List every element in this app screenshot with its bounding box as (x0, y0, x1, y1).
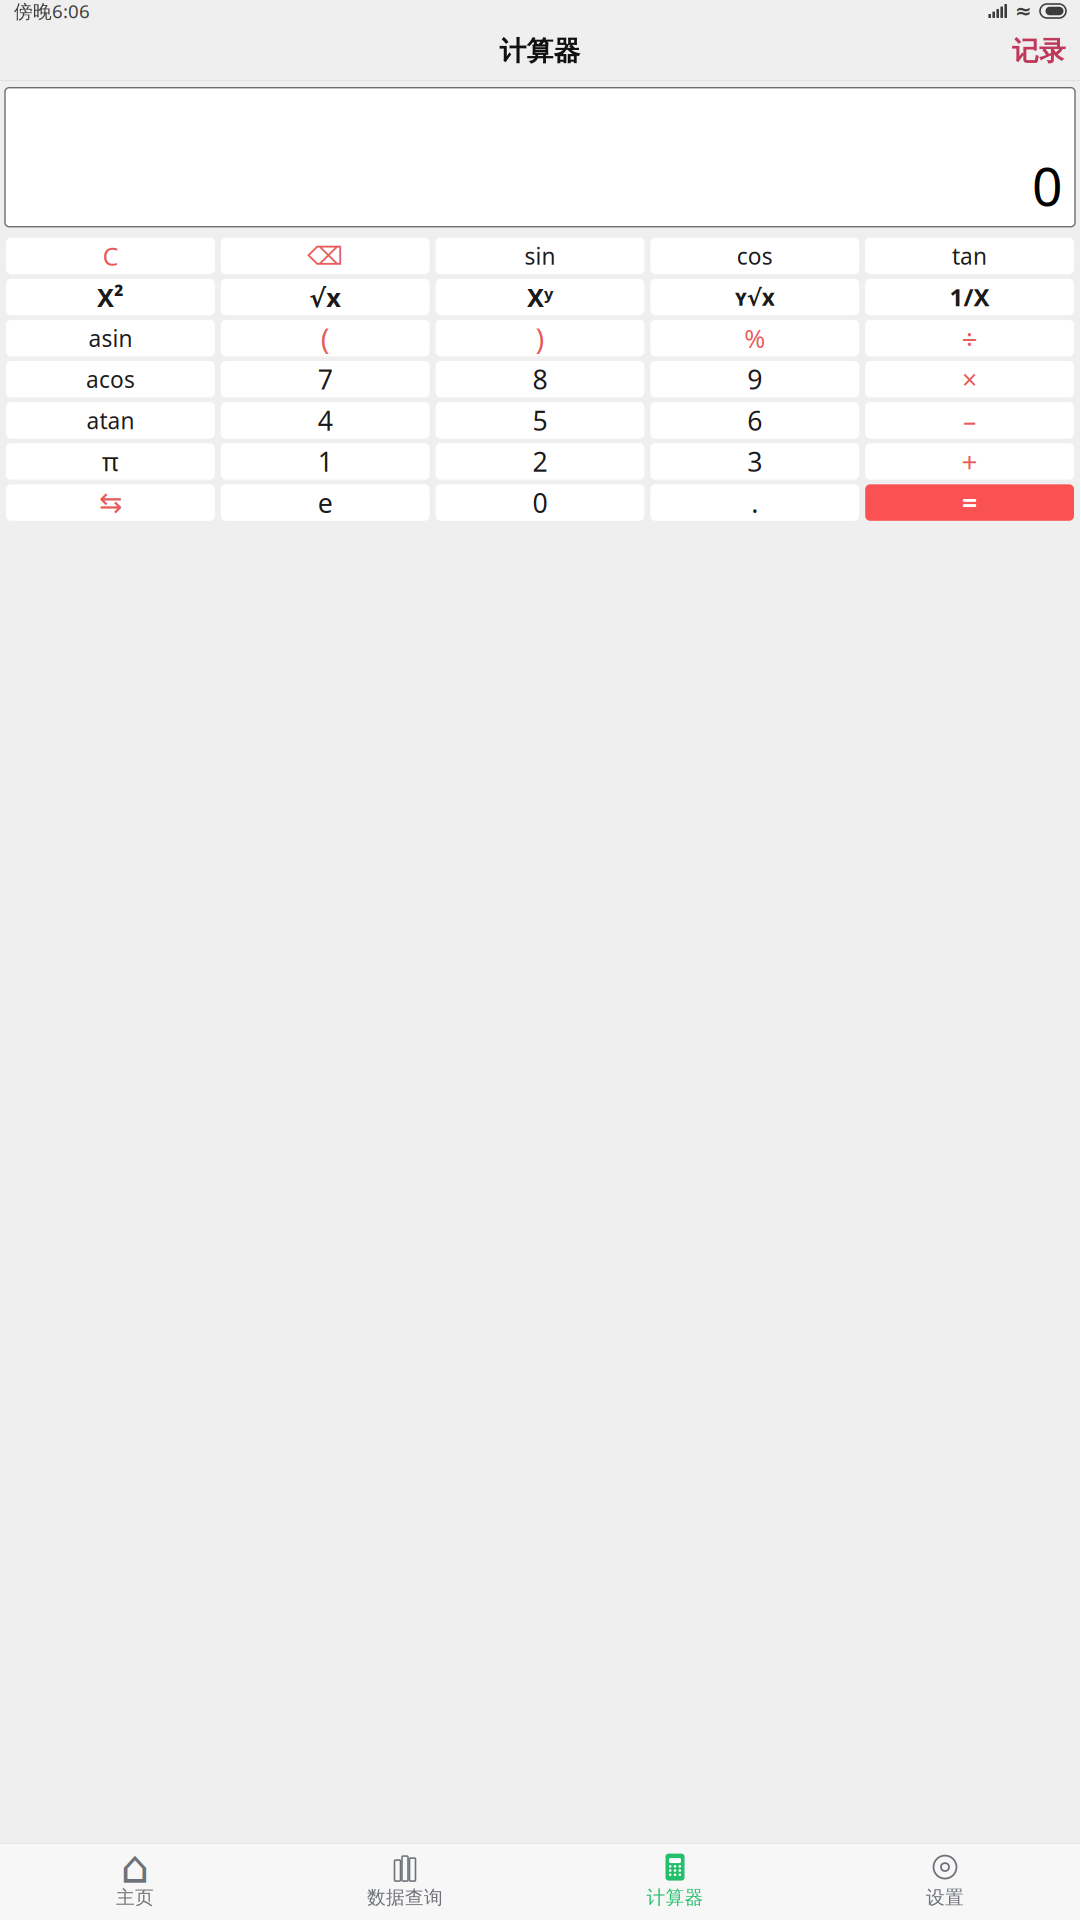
button[interactable]: π (6, 443, 215, 480)
button[interactable]: 3 (650, 443, 859, 480)
staticText: ⌂ (120, 1841, 149, 1893)
staticText: 计算器 (646, 1886, 703, 1909)
staticText: e (318, 485, 333, 520)
button[interactable]: ⌂ (0, 1844, 270, 1920)
staticText: 1 (318, 444, 333, 479)
staticText: . (751, 485, 758, 520)
button[interactable]: C (6, 238, 215, 274)
button[interactable]: ) (436, 320, 644, 356)
button[interactable]: × (865, 361, 1074, 397)
button[interactable]: 设置 (810, 1844, 1080, 1920)
staticText: √x (309, 280, 341, 314)
button[interactable]: 计算器 (540, 1844, 810, 1920)
button[interactable]: ÷ (865, 320, 1074, 356)
staticText: % (744, 321, 765, 355)
button[interactable]: 1 (221, 443, 430, 480)
staticText: 4 (318, 403, 333, 438)
staticText: 5 (532, 403, 547, 438)
button[interactable]: 1/X (865, 279, 1074, 315)
button[interactable]: 5 (436, 402, 644, 439)
staticText: C (102, 239, 118, 273)
staticText: 设置 (926, 1886, 964, 1909)
staticText: tan (952, 241, 987, 271)
staticText: 8 (532, 361, 547, 397)
button[interactable]: 6 (650, 402, 859, 439)
button[interactable]: ( (221, 320, 430, 356)
button[interactable]: 7 (221, 361, 430, 397)
staticText: ʏ√x (735, 282, 775, 312)
button[interactable]: 0 (436, 484, 644, 521)
button[interactable]: ʏ√x (650, 279, 859, 315)
staticText: ⇆ (99, 487, 122, 518)
staticText: × (962, 361, 977, 397)
button[interactable]: sin (436, 238, 644, 274)
button[interactable]: √x (221, 279, 430, 315)
button[interactable]: X² (6, 279, 215, 315)
staticText: ) (535, 319, 544, 358)
staticText: acos (86, 364, 135, 394)
staticText: ≈ (1015, 0, 1032, 22)
staticText: 0 (532, 485, 547, 520)
button[interactable]: . (650, 484, 859, 521)
staticText: ÷ (962, 320, 978, 357)
button[interactable]: atan (6, 402, 215, 439)
button[interactable]: 数据查询 (270, 1844, 540, 1920)
staticText: 3 (747, 444, 762, 479)
staticText: – (963, 403, 976, 438)
button[interactable]: 记录 (998, 27, 1080, 75)
staticText: = (962, 485, 977, 520)
staticText: asin (88, 323, 132, 353)
button[interactable]: ⇆ (6, 484, 215, 521)
button[interactable]: 9 (650, 361, 859, 397)
staticText: 7 (318, 361, 333, 397)
button[interactable]: asin (6, 320, 215, 356)
button[interactable]: Xʸ (436, 279, 644, 315)
staticText: 记录 (1012, 35, 1066, 67)
staticText: sin (524, 241, 555, 271)
staticText: 数据查询 (367, 1886, 443, 1909)
button[interactable]: acos (6, 361, 215, 397)
staticText: + (962, 443, 978, 480)
button[interactable]: % (650, 320, 859, 356)
button[interactable]: ⌫ (221, 238, 430, 274)
staticText: 6 (747, 403, 762, 438)
button[interactable]: tan (865, 238, 1074, 274)
staticText: 2 (532, 444, 547, 479)
button[interactable]: e (221, 484, 430, 521)
button[interactable]: + (865, 443, 1074, 480)
staticText: 计算器 (499, 35, 580, 67)
button[interactable]: – (865, 402, 1074, 439)
staticText: X² (97, 280, 124, 314)
staticText: 1/X (950, 281, 990, 313)
button[interactable]: = (865, 484, 1074, 521)
button[interactable]: cos (650, 238, 859, 274)
staticText: 主页 (116, 1886, 154, 1909)
staticText: atan (86, 405, 134, 435)
button[interactable]: 8 (436, 361, 644, 397)
button[interactable]: 2 (436, 443, 644, 480)
button[interactable]: 4 (221, 402, 430, 439)
staticText: 傍晚6:06 (14, 0, 90, 23)
staticText: π (102, 445, 119, 478)
staticText: Xʸ (527, 280, 553, 314)
staticText: cos (737, 241, 773, 271)
staticText: 9 (747, 361, 762, 397)
staticText: 0 (1032, 150, 1063, 221)
staticText: ⌫ (307, 242, 343, 270)
staticText: ( (321, 319, 330, 358)
